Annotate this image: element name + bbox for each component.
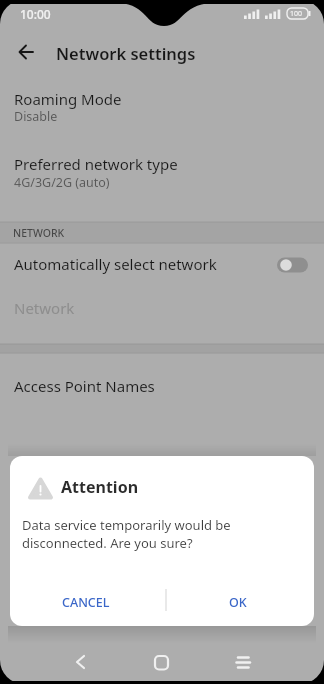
button[interactable]: [10, 36, 44, 68]
staticText: Roaming Mode: [14, 89, 122, 109]
staticText: 100: [290, 9, 303, 19]
staticText: Disable: [14, 108, 58, 125]
button[interactable]: Access Point Names: [0, 371, 324, 413]
button[interactable]: OK: [182, 586, 294, 618]
button[interactable]: [138, 645, 186, 679]
button[interactable]: [219, 645, 267, 679]
button[interactable]: [60, 645, 108, 679]
staticText: Preferred network type: [14, 154, 178, 174]
staticText: Network: [14, 298, 75, 318]
staticText: Data service temporarily would be discon…: [22, 516, 231, 552]
staticText: Network settings: [56, 42, 196, 64]
staticText: NETWORK: [13, 226, 65, 240]
button[interactable]: Preferred network type: [0, 150, 324, 206]
staticText: Automatically select network: [14, 254, 217, 274]
staticText: CANCEL: [62, 594, 110, 611]
staticText: 10:00: [20, 6, 51, 22]
button[interactable]: CANCEL: [30, 586, 142, 618]
staticText: Attention: [61, 476, 139, 498]
staticText: OK: [229, 594, 247, 611]
button[interactable]: Automatically select network: [0, 248, 324, 288]
button[interactable]: Roaming Mode: [0, 85, 324, 141]
staticText: 4G/3G/2G (auto): [14, 174, 110, 191]
staticText: Access Point Names: [14, 376, 155, 396]
button[interactable]: Network: [0, 292, 324, 332]
